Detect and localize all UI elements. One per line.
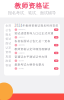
staticText: 语言文字网 (18, 60, 23, 61)
staticText: 笔试 (5, 37, 11, 41)
staticText: 查看 (55, 60, 57, 61)
button[interactable]: 政策 (4, 59, 13, 63)
staticText: 2024年教师资格证报名时间安排 (15, 24, 58, 27)
staticText: 真题 (5, 55, 11, 58)
staticText: 认定服务平台 (18, 52, 24, 54)
button[interactable]: 教师资格认定详细流程解读 (13, 47, 60, 55)
staticText: 教师资格证 (14, 2, 49, 10)
staticText: 查看 (55, 29, 57, 30)
staticText: 省教育考试院 (18, 44, 24, 46)
button[interactable]: 2024年教师资格证报名时间安排 (13, 23, 60, 31)
staticText: 全国统考公告 (18, 36, 24, 38)
staticText: 查看 (55, 44, 57, 46)
staticText: 教育部考试中心 (18, 29, 25, 30)
staticText: 公告 (5, 28, 11, 32)
button[interactable]: 面试 (4, 41, 13, 45)
button[interactable]: 普通话水平测试证书办理 (13, 55, 60, 62)
staticText: 考试大纲组 (18, 68, 23, 69)
button[interactable]: 资料 (4, 50, 13, 54)
button[interactable]: 笔试 (4, 37, 13, 41)
button[interactable]: 认定 (4, 45, 13, 50)
staticText: 笔试成绩查询入口已正式开通 (15, 32, 54, 35)
button[interactable]: 笔试成绩查询入口已正式开通 (13, 31, 60, 39)
staticText: 查看 (55, 68, 57, 69)
staticText: 查看 (55, 52, 57, 54)
staticText: 各省份面试公告汇总一览表 (15, 40, 51, 43)
button[interactable]: 答疑 (4, 63, 13, 67)
staticText: 全部 (5, 24, 11, 27)
staticText: 普通话水平测试证书办理 (15, 55, 48, 58)
button[interactable]: 全部 (4, 23, 13, 28)
staticText: 政策 (5, 59, 11, 63)
button[interactable]: 报名 (4, 32, 13, 37)
button[interactable]: 公告 (4, 28, 13, 32)
staticText: 最新考试大纲变化要点 (15, 63, 45, 66)
button[interactable]: 真题 (4, 54, 13, 59)
staticText: 资料 (5, 50, 11, 54)
staticText: 查看 (55, 36, 57, 38)
staticText: 答疑 (5, 64, 11, 67)
button[interactable]: 各省份面试公告汇总一览表 (13, 39, 60, 47)
staticText: 报名考试、笔试、面试辅导 (8, 10, 56, 15)
staticText: 教师资格认定详细流程解读 (15, 47, 51, 51)
button[interactable]: 最新考试大纲变化要点 (13, 62, 60, 70)
staticText: 认定 (5, 46, 11, 49)
staticText: 面试 (5, 42, 11, 45)
staticText: 报名 (5, 33, 11, 36)
